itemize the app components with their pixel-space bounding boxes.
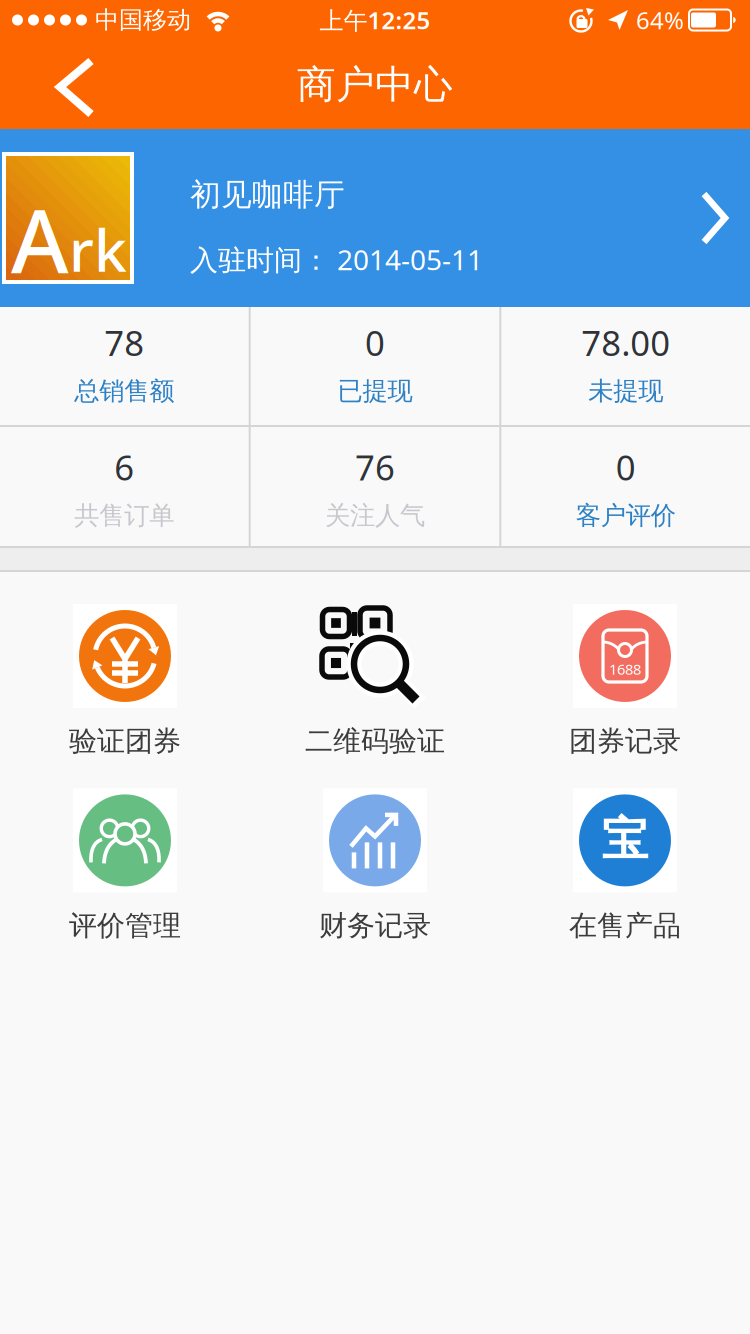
staticText: 76: [355, 444, 395, 490]
staticText: 评价管理: [69, 908, 181, 943]
button[interactable]: 78.00: [501, 307, 750, 425]
staticText: 财务记录: [319, 908, 431, 943]
staticText: 总销售额: [74, 375, 174, 407]
button[interactable]: A: [0, 129, 750, 307]
staticText: 关注人气: [325, 500, 425, 531]
button[interactable]: 宝: [569, 788, 681, 943]
button[interactable]: 0: [501, 427, 750, 546]
button[interactable]: 返回: [0, 40, 140, 129]
staticText: 64%: [636, 4, 684, 36]
button[interactable]: 78: [0, 307, 249, 425]
staticText: A: [11, 181, 69, 297]
button[interactable]: 1688: [569, 604, 681, 758]
staticText: 验证团券: [69, 724, 181, 758]
staticText: 团券记录: [569, 724, 681, 758]
staticText: 初见咖啡厅: [190, 176, 345, 214]
staticText: rk: [69, 210, 127, 288]
staticText: 商户中心: [297, 61, 453, 108]
staticText: 0: [616, 444, 636, 490]
button[interactable]: 财务记录: [319, 788, 431, 943]
staticText: 0: [365, 319, 385, 365]
staticText: 6: [114, 444, 134, 490]
staticText: 1688: [609, 659, 641, 679]
staticText: 上午12:25: [319, 4, 430, 36]
staticText: 客户评价: [576, 500, 676, 531]
button[interactable]: 6: [0, 427, 249, 546]
button[interactable]: 评价管理: [69, 788, 181, 943]
staticText: 已提现: [337, 375, 412, 407]
button[interactable]: 76: [251, 427, 499, 546]
button[interactable]: 二维码验证: [305, 604, 445, 758]
staticText: 在售产品: [569, 908, 681, 943]
button[interactable]: 0: [251, 307, 499, 425]
staticText: 共售订单: [74, 500, 174, 531]
staticText: 未提现: [588, 375, 663, 407]
staticText: 78.00: [581, 319, 670, 365]
button[interactable]: 验证团券: [69, 604, 181, 758]
staticText: 宝: [601, 811, 648, 868]
staticText: 中国移动: [95, 5, 191, 35]
staticText: 二维码验证: [305, 724, 445, 758]
staticText: 78: [104, 319, 144, 365]
staticText: 入驻时间： 2014-05-11: [190, 241, 483, 278]
